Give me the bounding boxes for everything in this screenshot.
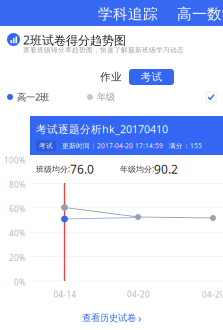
staticText: 20% [9, 253, 26, 263]
button[interactable]: 作业 [96, 69, 126, 85]
staticText: 04-14 [53, 289, 76, 300]
staticText: 考试 [140, 70, 162, 83]
staticText: 满分：155 [169, 141, 202, 150]
button[interactable]: 年级 [87, 91, 115, 103]
staticText: 80% [9, 179, 26, 190]
staticText: 高一数学 [177, 5, 223, 23]
staticText: 班级均分: [36, 164, 70, 174]
button[interactable]: 查看历史试卷 [0, 306, 223, 330]
staticText: 考试逐题分析hk_20170410 [36, 122, 168, 136]
staticText: 高一2班 [17, 91, 49, 103]
staticText: 04-20 [127, 289, 150, 300]
staticText: 04-20 [202, 289, 223, 300]
staticText: 学科追踪 [98, 5, 158, 23]
staticText: 年级 [97, 91, 115, 103]
button[interactable]: 考试 [129, 69, 174, 85]
staticText: 更新时间：2017-04-20 17:14:59 [62, 141, 163, 150]
button[interactable]: 高一2班 [7, 91, 49, 103]
staticText: 60% [9, 204, 26, 214]
staticText: 90.2 [154, 161, 178, 177]
staticText: 40% [9, 228, 26, 239]
staticText: 查看班级得分率趋势图，快速了解最新班级学习动态 [23, 46, 184, 54]
staticText: 0% [14, 277, 26, 288]
staticText: 2班试卷得分趋势图 [23, 32, 126, 48]
staticText: 作业 [100, 70, 122, 83]
staticText: › [138, 311, 141, 325]
staticText: 年级均分: [120, 164, 154, 174]
staticText: 查看历史试卷 [82, 312, 136, 324]
staticText: 100% [4, 155, 26, 166]
staticText: 76.0 [70, 161, 94, 177]
button[interactable]: Select all [206, 92, 216, 102]
staticText: 考试 [39, 142, 53, 150]
